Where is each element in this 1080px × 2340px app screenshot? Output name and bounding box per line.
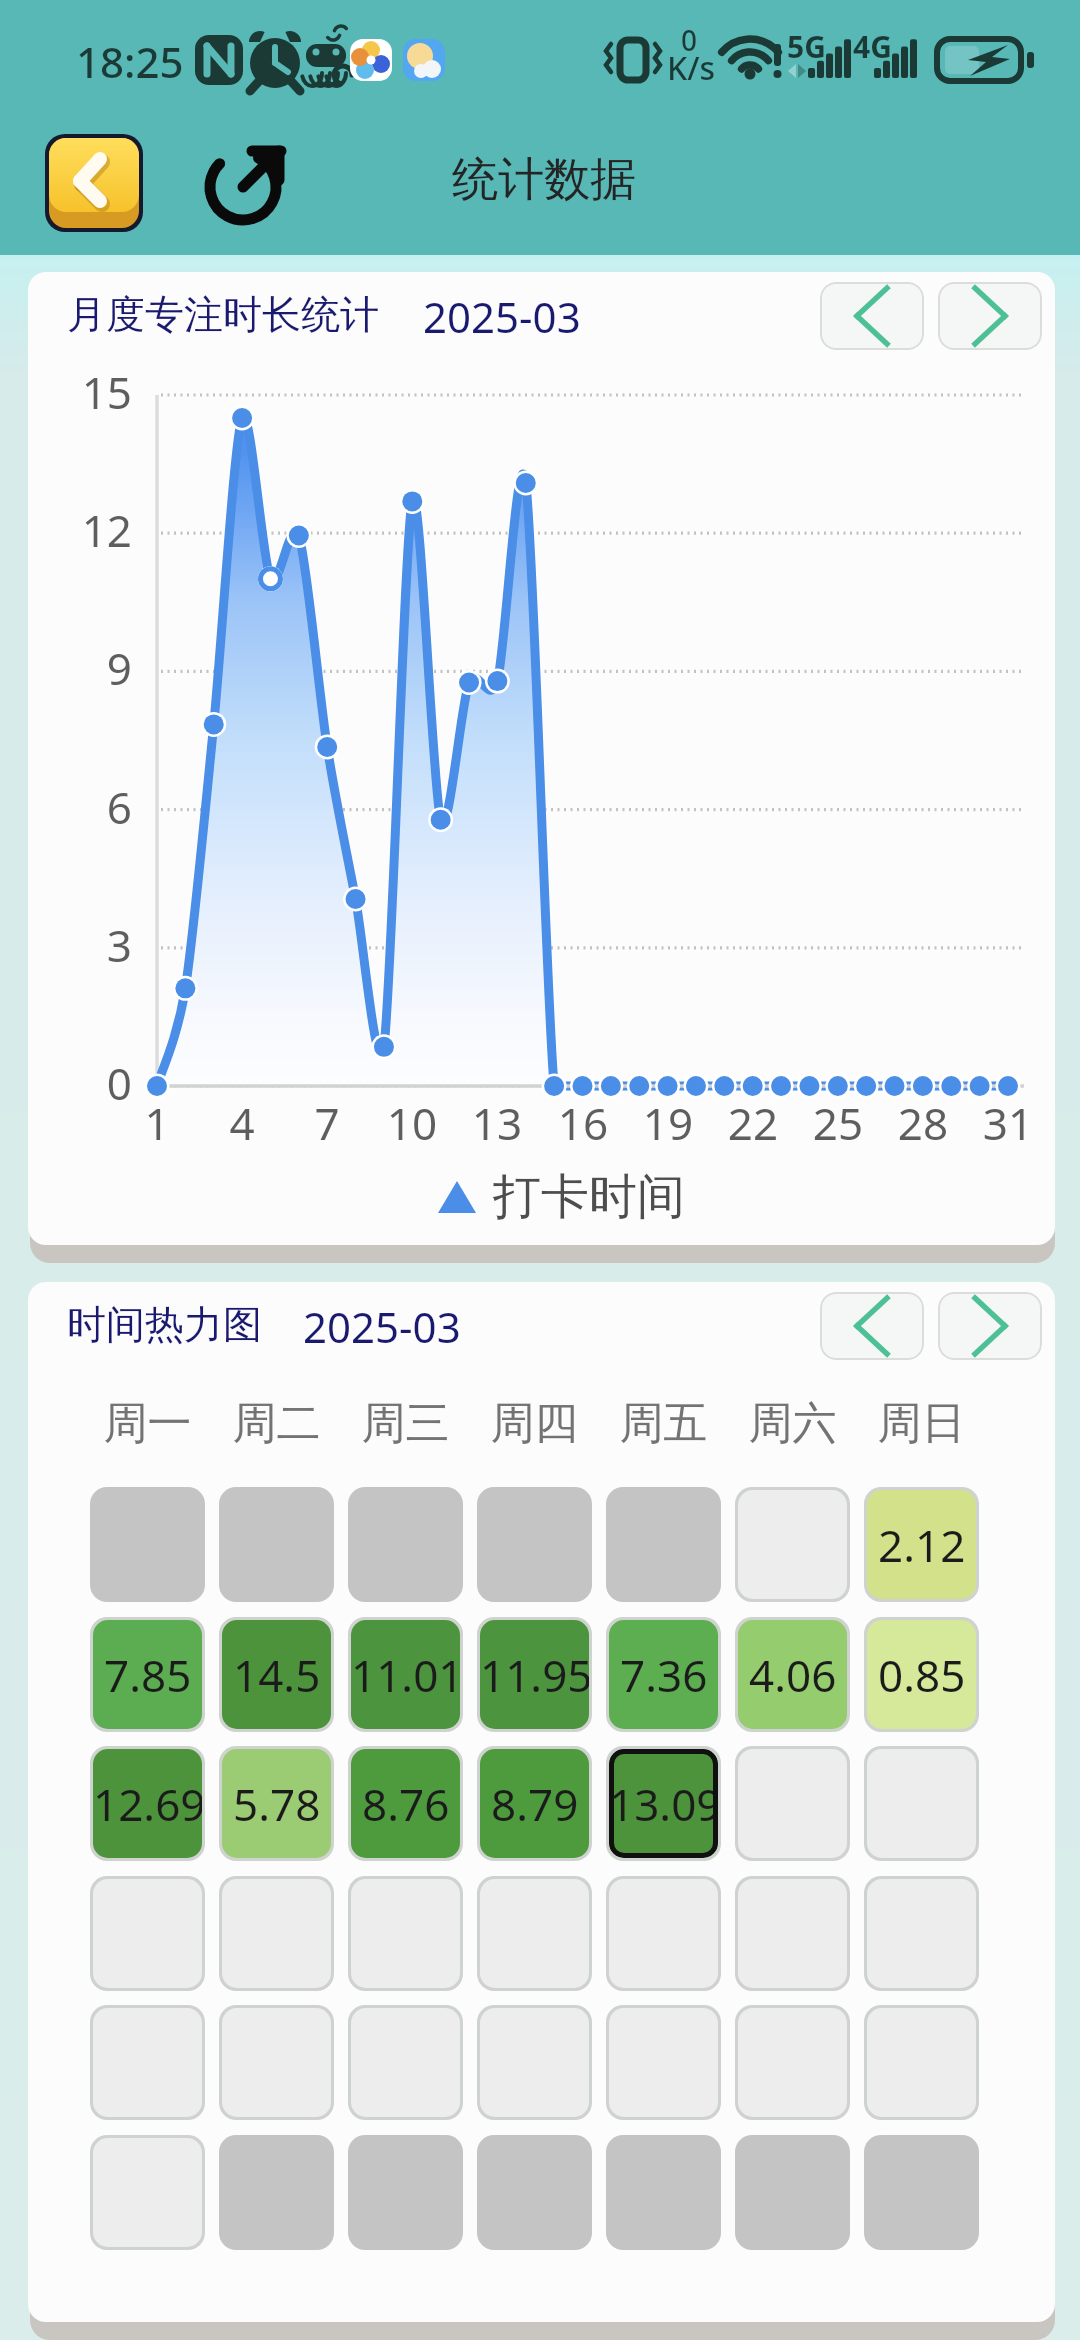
staticText: 2025-03 <box>303 1298 461 1355</box>
button[interactable]: 0.85 <box>867 1620 976 1729</box>
button[interactable] <box>351 1879 460 1988</box>
staticText: 14.5 <box>233 1645 321 1705</box>
button[interactable]: Next month <box>938 282 1042 350</box>
button[interactable] <box>735 2135 850 2250</box>
staticText: 4.06 <box>749 1645 837 1705</box>
button[interactable] <box>609 1879 718 1988</box>
button[interactable] <box>477 2135 592 2250</box>
button[interactable] <box>90 1487 205 1602</box>
button[interactable]: 12.69 <box>93 1749 202 1858</box>
staticText: 8.76 <box>362 1774 450 1834</box>
button[interactable] <box>480 1879 589 1988</box>
button[interactable] <box>867 1749 976 1858</box>
staticText: 4G <box>853 26 892 67</box>
button[interactable] <box>864 2135 979 2250</box>
button[interactable] <box>606 1487 721 1602</box>
button[interactable] <box>219 1487 334 1602</box>
staticText: 18:25 <box>76 33 184 90</box>
staticText: 19 <box>628 1093 708 1153</box>
button[interactable]: Next month <box>938 1292 1042 1360</box>
staticText: 12 <box>54 500 132 560</box>
button[interactable]: Previous month <box>820 1292 924 1360</box>
staticText: 13 <box>457 1093 537 1153</box>
staticText: 11.01 <box>351 1645 460 1705</box>
staticText: 统计数据 <box>452 151 636 209</box>
staticText: 10 <box>372 1093 452 1153</box>
button[interactable]: 5.78 <box>222 1749 331 1858</box>
button[interactable] <box>93 2008 202 2117</box>
button[interactable] <box>867 1879 976 1988</box>
button[interactable]: 14.5 <box>222 1620 331 1729</box>
button[interactable]: 8.79 <box>480 1749 589 1858</box>
button[interactable]: 7.85 <box>93 1620 202 1729</box>
staticText: 5G <box>787 26 826 67</box>
staticText: 月度专注时长统计 <box>67 290 379 339</box>
staticText: 0 <box>681 21 698 59</box>
button[interactable] <box>738 2008 847 2117</box>
staticText: 2025-03 <box>423 288 581 345</box>
button[interactable]: 8.76 <box>351 1749 460 1858</box>
staticText: 时间热力图 <box>67 1300 262 1349</box>
staticText: 1 <box>117 1093 197 1153</box>
staticText: 周二 <box>211 1396 342 1451</box>
button[interactable] <box>477 1487 592 1602</box>
staticText: 15 <box>54 362 132 422</box>
button[interactable]: Back <box>45 134 143 232</box>
button[interactable] <box>480 2008 589 2117</box>
staticText: 周五 <box>598 1396 729 1451</box>
staticText: 打卡时间 <box>493 1167 685 1227</box>
button[interactable] <box>738 1879 847 1988</box>
staticText: 25 <box>798 1093 878 1153</box>
staticText: 31 <box>968 1093 1048 1153</box>
button[interactable] <box>219 2135 334 2250</box>
staticText: 5.78 <box>233 1774 321 1834</box>
staticText: 16 <box>543 1093 623 1153</box>
staticText: 7.36 <box>620 1645 708 1705</box>
staticText: 7.85 <box>104 1645 192 1705</box>
staticText: 28 <box>883 1093 963 1153</box>
button[interactable] <box>351 2008 460 2117</box>
staticText: 7 <box>287 1093 367 1153</box>
staticText: 9 <box>54 638 132 698</box>
button[interactable] <box>609 2008 718 2117</box>
staticText: 0 <box>54 1053 132 1113</box>
staticText: 周一 <box>82 1396 213 1451</box>
staticText: 6 <box>54 777 132 837</box>
button[interactable]: 13.09 <box>609 1749 718 1858</box>
button[interactable] <box>867 2008 976 2117</box>
button[interactable]: 11.01 <box>351 1620 460 1729</box>
staticText: 周三 <box>340 1396 471 1451</box>
staticText: 2.12 <box>878 1515 966 1575</box>
button[interactable] <box>93 2138 202 2247</box>
button[interactable]: Previous month <box>820 282 924 350</box>
staticText: 周四 <box>469 1396 600 1451</box>
button[interactable] <box>93 1879 202 1988</box>
staticText: 22 <box>713 1093 793 1153</box>
button[interactable]: 4.06 <box>738 1620 847 1729</box>
button[interactable]: 11.95 <box>480 1620 589 1729</box>
button[interactable] <box>738 1490 847 1599</box>
button[interactable] <box>348 1487 463 1602</box>
staticText: K/s <box>667 46 716 90</box>
button[interactable] <box>222 2008 331 2117</box>
button[interactable] <box>348 2135 463 2250</box>
staticText: 12.69 <box>93 1774 202 1834</box>
button[interactable] <box>222 1879 331 1988</box>
staticText: 8.79 <box>491 1774 579 1834</box>
staticText: 周日 <box>856 1396 987 1451</box>
staticText: 0.85 <box>878 1645 966 1705</box>
button[interactable]: 7.36 <box>609 1620 718 1729</box>
staticText: 4 <box>202 1093 282 1153</box>
staticText: 13.09 <box>609 1774 718 1834</box>
button[interactable] <box>738 1749 847 1858</box>
button[interactable]: 2.12 <box>867 1490 976 1599</box>
staticText: 3 <box>54 915 132 975</box>
button[interactable]: Share <box>197 137 289 229</box>
button[interactable] <box>606 2135 721 2250</box>
staticText: 11.95 <box>480 1645 589 1705</box>
staticText: 周六 <box>727 1396 858 1451</box>
